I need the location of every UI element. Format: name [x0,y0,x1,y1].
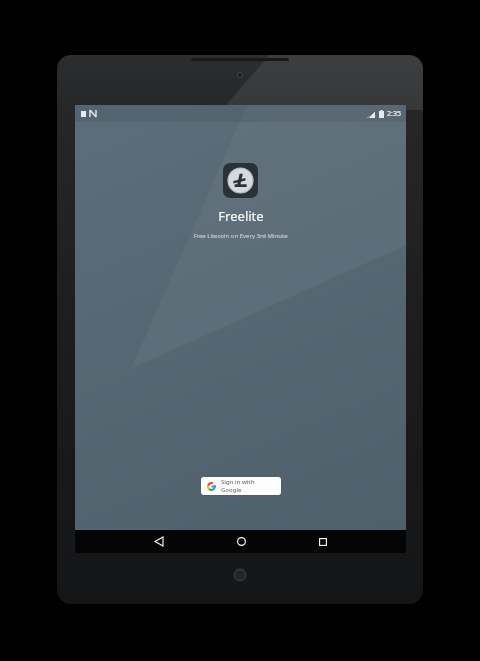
staticText: Freelite [218,207,264,225]
button[interactable]: Back [131,530,187,553]
button[interactable]: Sign in with Google [201,477,281,495]
staticText: 2:35 [387,109,401,119]
staticText: Free Litecoin on Every 3rd Minute [193,232,288,240]
staticText: Sign in with Google [221,478,275,494]
button[interactable]: Home [213,530,269,553]
button[interactable]: Recent apps [295,530,351,553]
button[interactable]: Freelite app icon [223,163,258,198]
